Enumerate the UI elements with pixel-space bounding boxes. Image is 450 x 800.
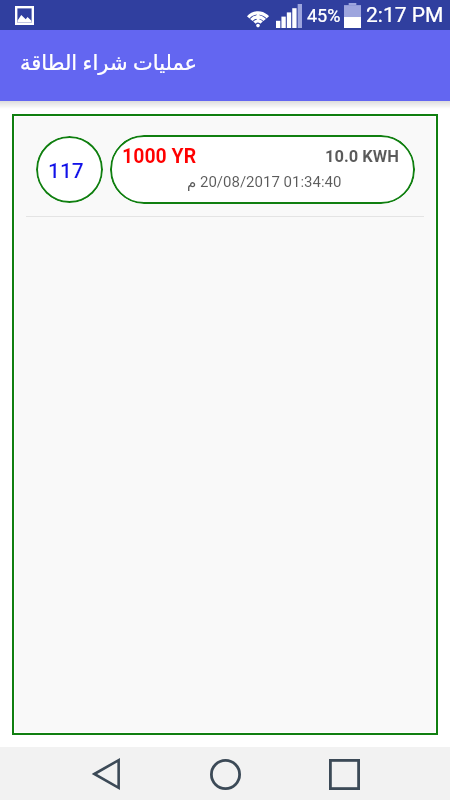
button[interactable]: Recent apps — [320, 750, 368, 798]
button[interactable]: Home — [201, 750, 249, 798]
staticText: 1000 YR — [122, 145, 197, 168]
staticText: 45% — [307, 5, 341, 26]
staticText: عمليات شراء الطاقة — [20, 48, 198, 77]
button[interactable]: Back — [82, 750, 130, 798]
button[interactable]: 117 — [15, 117, 435, 217]
staticText: 2:17 PM — [366, 3, 444, 28]
staticText: 10.0 KWH — [325, 147, 399, 166]
staticText: م ‪20/08/2017 01:34:40‬ — [187, 173, 342, 191]
staticText: 117 — [48, 159, 84, 184]
